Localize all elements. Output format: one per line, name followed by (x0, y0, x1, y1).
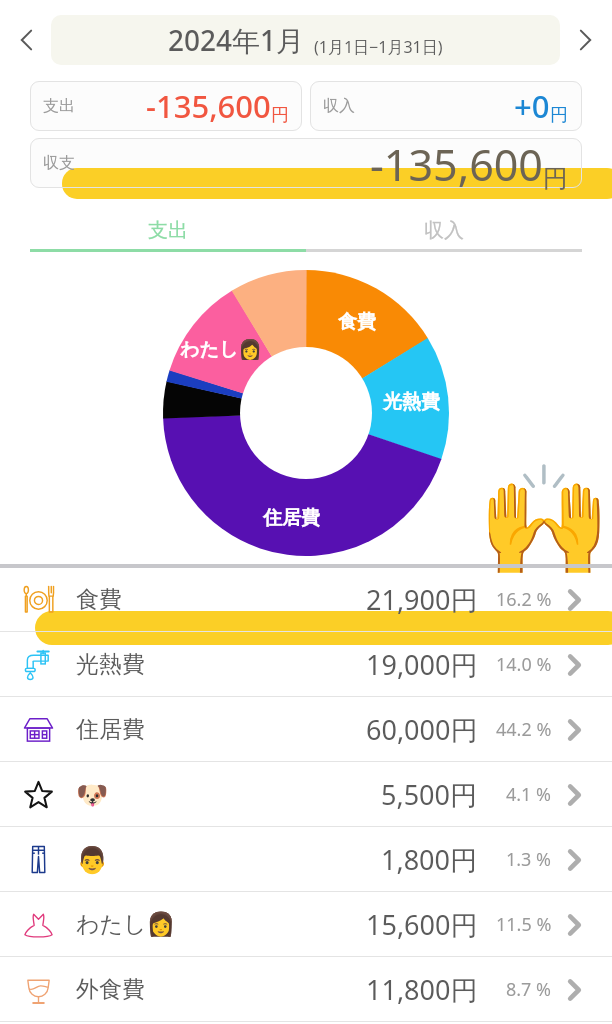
staticText: 円 (543, 163, 568, 194)
button[interactable] (30, 81, 302, 131)
staticText: 住居費 (76, 715, 145, 744)
button[interactable]: Previous month (5, 18, 49, 62)
button[interactable] (30, 138, 582, 188)
staticText: 光熱費 (383, 390, 440, 414)
staticText: 1,800円 (381, 841, 478, 878)
button[interactable] (0, 827, 612, 892)
button[interactable]: 収入 (306, 212, 582, 249)
staticText: 4.1 % (506, 782, 552, 807)
staticText: 11.5 % (496, 912, 552, 937)
button[interactable] (0, 567, 612, 632)
staticText: +0 (514, 85, 550, 127)
staticText: 44.2 % (496, 717, 552, 742)
button[interactable] (0, 892, 612, 957)
staticText: 60,000円 (366, 711, 478, 748)
staticText: 11,800円 (366, 971, 478, 1008)
staticText: 2024年1月 (168, 21, 305, 59)
staticText: 収入 (323, 96, 355, 116)
staticText: 収入 (424, 218, 464, 243)
staticText: 円 (271, 104, 289, 127)
staticText: 8.7 % (506, 977, 552, 1002)
button[interactable] (0, 697, 612, 762)
staticText: 🐶 (76, 780, 109, 810)
button[interactable]: 2024年1月 (51, 15, 560, 65)
staticText: -135,600 (146, 85, 271, 127)
staticText: 支出 (148, 218, 188, 243)
button[interactable] (0, 762, 612, 827)
staticText: 🙌 (477, 458, 612, 585)
staticText: 19,000円 (366, 646, 478, 683)
button[interactable]: 支出 (30, 212, 306, 249)
staticText: 支出 (43, 96, 75, 116)
staticText: 👨 (76, 845, 109, 875)
staticText: 14.0 % (496, 652, 552, 677)
staticText: 5,500円 (381, 776, 478, 813)
staticText: わたし👩 (76, 910, 176, 939)
button[interactable] (310, 81, 582, 131)
staticText: 1.3 % (506, 847, 552, 872)
staticText: (1月1日−1月31日) (314, 36, 443, 58)
staticText: わたし👩 (180, 338, 262, 362)
staticText: 外食費 (76, 975, 145, 1004)
staticText: 住居費 (263, 506, 320, 530)
staticText: 21,900円 (366, 581, 478, 618)
staticText: -135,600 (370, 135, 543, 194)
button[interactable] (0, 632, 612, 697)
staticText: 円 (550, 104, 568, 127)
staticText: 16.2 % (496, 587, 552, 612)
staticText: 光熱費 (76, 650, 145, 679)
staticText: 収支 (43, 153, 75, 173)
staticText: 食費 (76, 585, 122, 614)
button[interactable] (0, 957, 612, 1022)
staticText: 15,600円 (366, 906, 478, 943)
staticText: 食費 (338, 310, 376, 334)
button[interactable]: Next month (563, 18, 607, 62)
